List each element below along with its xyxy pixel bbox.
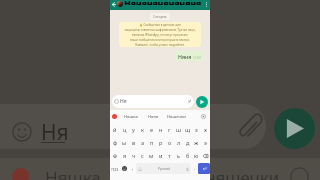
button[interactable]: р xyxy=(156,136,165,149)
staticText: р xyxy=(159,139,163,147)
staticText: Няняняняняняняня xyxy=(124,0,202,5)
button[interactable]: ш xyxy=(174,123,183,136)
staticText: Няня xyxy=(178,53,192,60)
button[interactable]: ц xyxy=(120,123,129,136)
button[interactable]: ?123 xyxy=(110,163,120,174)
staticText: с xyxy=(141,152,144,160)
staticText: Ня xyxy=(120,98,127,105)
button[interactable]: Русский xyxy=(136,163,191,174)
button[interactable]: Back xyxy=(110,0,117,8)
staticText: щ xyxy=(185,126,191,134)
staticText: т xyxy=(168,152,171,160)
button[interactable]: Няшечки xyxy=(167,114,186,120)
staticText: д xyxy=(186,139,190,147)
button[interactable]: More options xyxy=(202,0,210,8)
button[interactable]: Няшка xyxy=(124,114,138,120)
button[interactable]: с xyxy=(138,149,147,162)
staticText: г xyxy=(168,126,171,134)
button[interactable]: Google search xyxy=(112,114,117,119)
staticText: ы xyxy=(122,139,127,147)
button[interactable]: я xyxy=(120,149,129,162)
staticText: ж xyxy=(194,139,199,147)
button[interactable]: л xyxy=(174,136,183,149)
staticText: ч xyxy=(132,152,136,160)
button[interactable]: Enter xyxy=(198,163,210,174)
staticText: 11:50 xyxy=(193,56,201,60)
staticText: а xyxy=(141,139,145,147)
button[interactable]: Няня xyxy=(148,114,159,120)
staticText: Сегодня xyxy=(153,14,167,19)
staticText: ь xyxy=(177,152,181,160)
button[interactable]: п xyxy=(147,136,156,149)
staticText: п xyxy=(150,139,154,147)
staticText: Няшка xyxy=(45,166,101,180)
staticText: к xyxy=(141,126,144,134)
staticText: . xyxy=(194,165,196,171)
button[interactable]: д xyxy=(183,136,192,149)
button[interactable]: и xyxy=(156,149,165,162)
staticText: я xyxy=(123,152,127,160)
button[interactable]: 🔒 Сообщения в данном чате защищены сквоз… xyxy=(119,22,201,47)
button[interactable]: у xyxy=(129,123,138,136)
button[interactable]: Keyboard settings xyxy=(201,114,206,119)
staticText: б xyxy=(186,152,190,160)
staticText: Русский xyxy=(158,167,171,171)
staticText: ?123 xyxy=(111,167,119,171)
button[interactable]: ч xyxy=(129,149,138,162)
button[interactable]: й xyxy=(110,123,120,136)
staticText: з xyxy=(195,126,198,134)
button[interactable]: Backspace xyxy=(201,149,210,162)
button[interactable]: Emoji xyxy=(120,163,129,174)
staticText: у xyxy=(132,126,135,134)
staticText: ц xyxy=(123,126,127,134)
staticText: , xyxy=(132,165,134,171)
staticText: м xyxy=(149,152,154,160)
staticText: е xyxy=(150,126,154,134)
button[interactable]: ф xyxy=(110,136,120,149)
button[interactable]: з xyxy=(192,123,201,136)
button[interactable]: т xyxy=(165,149,174,162)
staticText: няшечки xyxy=(205,166,280,180)
button[interactable]: Ня xyxy=(112,95,194,108)
button[interactable]: б xyxy=(183,149,192,162)
button[interactable]: ь xyxy=(174,149,183,162)
button[interactable]: х xyxy=(201,123,210,136)
button[interactable]: г xyxy=(165,123,174,136)
button[interactable]: Shift xyxy=(110,149,120,162)
button[interactable]: Send xyxy=(196,96,208,108)
button[interactable]: а xyxy=(138,136,147,149)
button[interactable]: в xyxy=(129,136,138,149)
button[interactable]: ю xyxy=(192,149,201,162)
button[interactable]: о xyxy=(165,136,174,149)
other: Attach xyxy=(187,99,192,104)
button[interactable]: . xyxy=(191,163,198,174)
button[interactable]: ы xyxy=(120,136,129,149)
staticText: о xyxy=(168,139,172,147)
button[interactable]: , xyxy=(129,163,136,174)
staticText: в xyxy=(132,139,136,147)
staticText: Ня xyxy=(41,118,69,147)
button[interactable]: н xyxy=(156,123,165,136)
button[interactable]: э xyxy=(201,136,210,149)
staticText: й xyxy=(113,126,117,134)
button[interactable]: м xyxy=(147,149,156,162)
staticText: х xyxy=(204,126,207,134)
button[interactable]: Няня xyxy=(176,51,203,61)
button[interactable]: Няняняняняняняня xyxy=(123,0,202,8)
button[interactable]: е xyxy=(147,123,156,136)
staticText: н xyxy=(159,126,163,134)
staticText: и xyxy=(159,152,163,160)
staticText: ф xyxy=(113,139,118,147)
staticText: ш xyxy=(176,126,182,134)
staticText: ю xyxy=(194,152,199,160)
button[interactable]: к xyxy=(138,123,147,136)
staticText: 🔒 Сообщения в данном чате защищены сквоз… xyxy=(124,23,196,47)
staticText: л xyxy=(177,139,181,147)
staticText: э xyxy=(204,139,207,147)
button[interactable]: ж xyxy=(192,136,201,149)
button[interactable]: щ xyxy=(183,123,192,136)
